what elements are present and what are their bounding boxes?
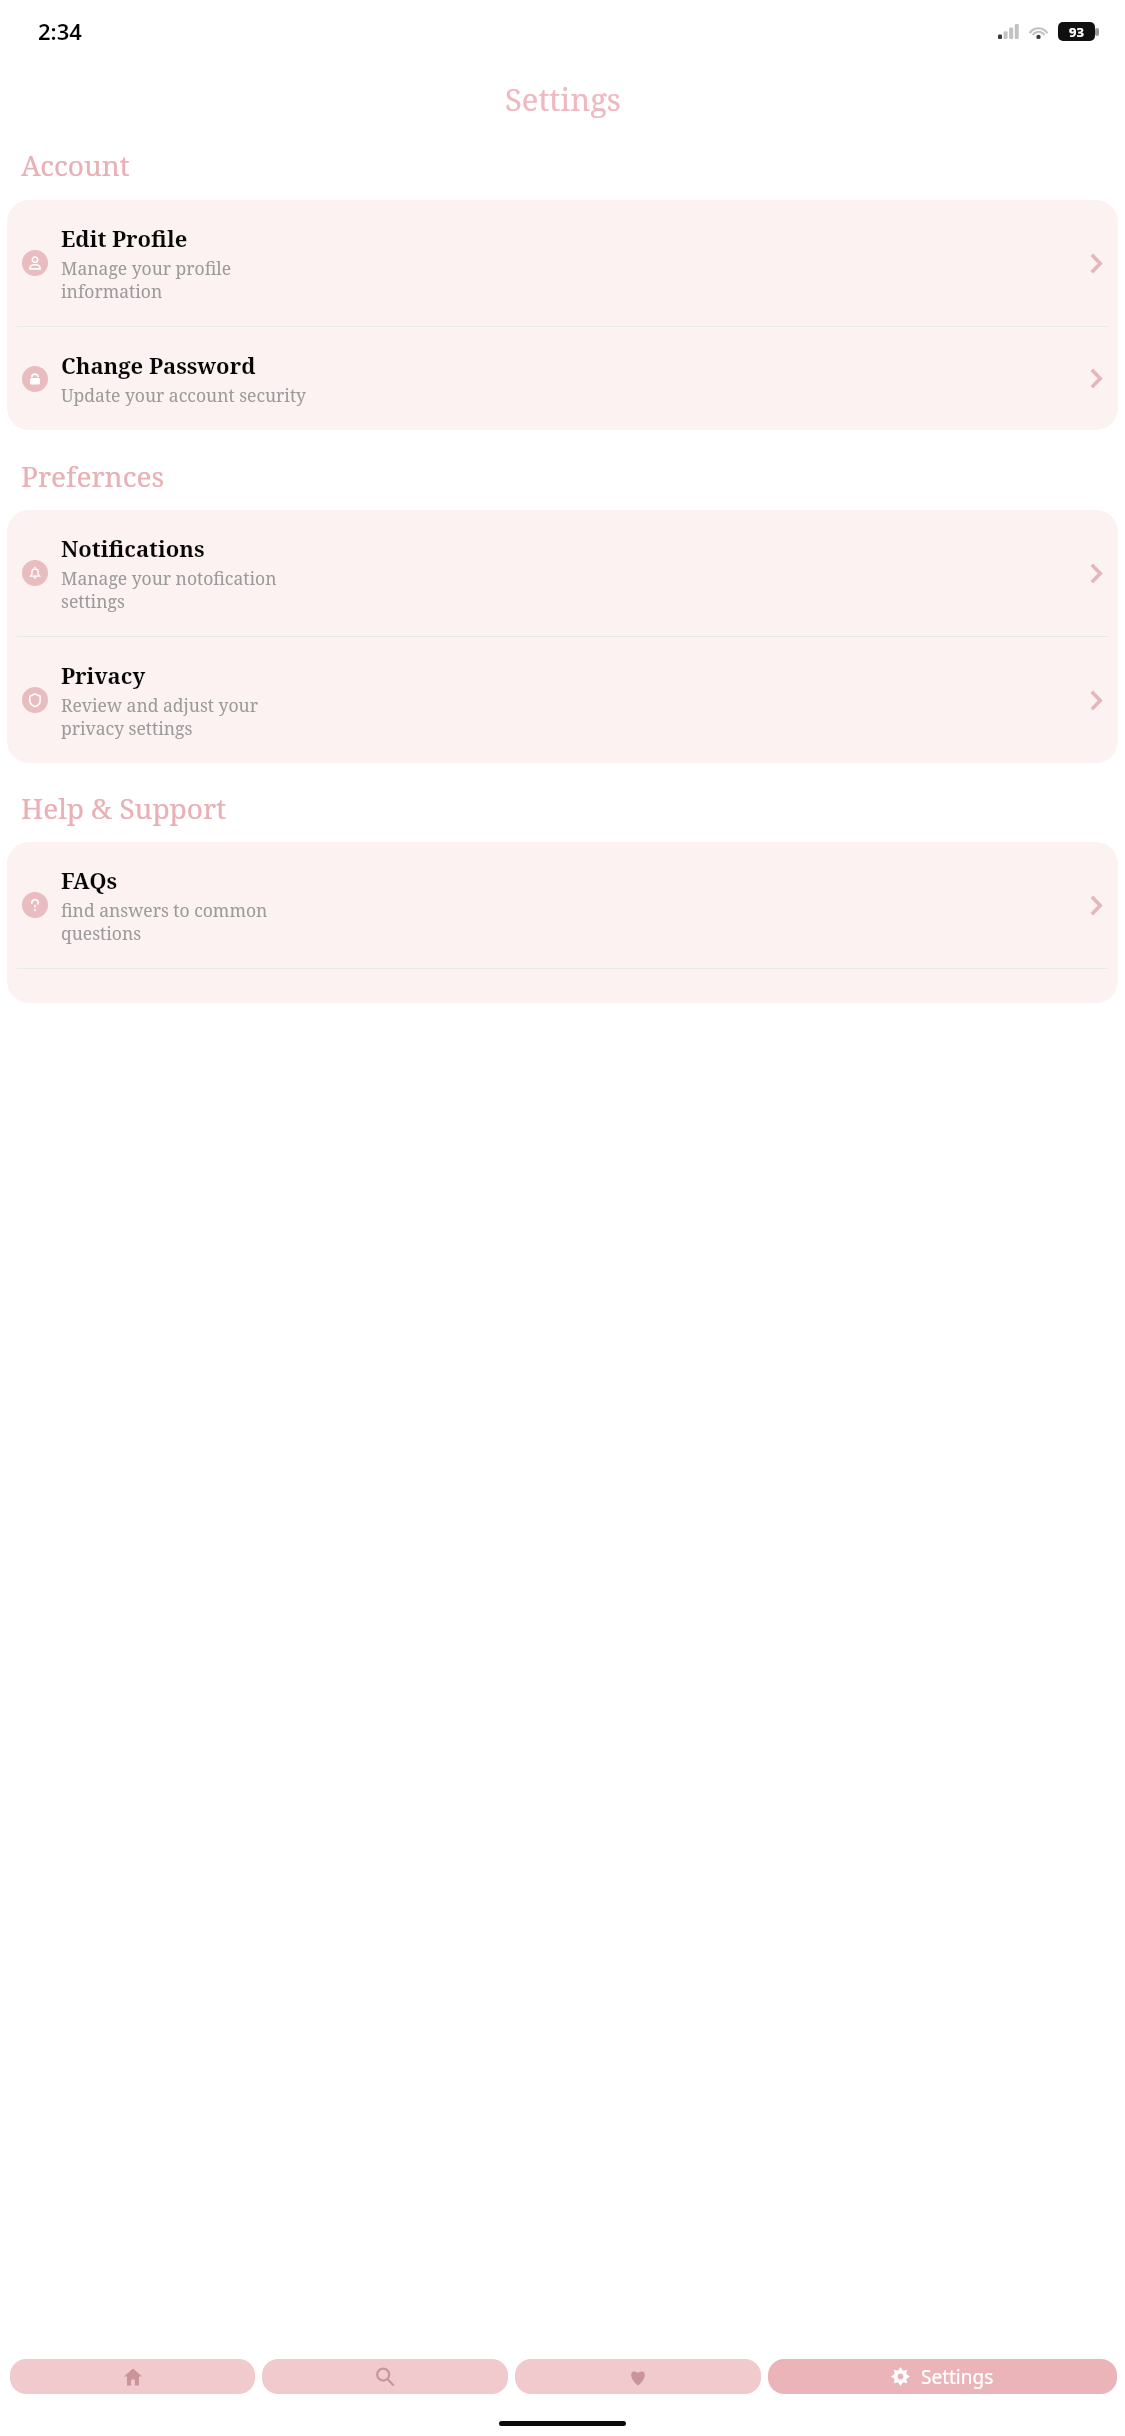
staticText: find answers to common questions xyxy=(61,898,268,945)
staticText: Review and adjust your privacy settings xyxy=(61,693,258,740)
staticText: FAQs xyxy=(61,865,118,895)
staticText: Update your account security xyxy=(61,383,306,407)
staticText: 2:34 xyxy=(38,16,82,46)
button[interactable]: Home xyxy=(10,2359,255,2394)
button[interactable]: Edit Profile xyxy=(7,200,1118,326)
staticText: Change Password xyxy=(61,350,256,380)
button[interactable]: Settings xyxy=(768,2359,1117,2394)
staticText: 93 xyxy=(1069,23,1084,41)
button[interactable]: Privacy xyxy=(7,637,1118,763)
staticText: Edit Profile xyxy=(61,223,188,253)
button[interactable]: Favorites xyxy=(515,2359,761,2394)
staticText: Settings xyxy=(921,2364,994,2390)
staticText: Privacy xyxy=(61,660,146,690)
staticText: Notifications xyxy=(61,533,205,563)
button[interactable]: FAQs xyxy=(7,842,1118,968)
staticText: Manage your notofication settings xyxy=(61,566,277,613)
staticText: Manage your profile information xyxy=(61,256,232,303)
button[interactable]: Change Password xyxy=(7,327,1118,430)
staticText: Prefernces xyxy=(21,457,165,495)
staticText: Settings xyxy=(505,78,621,120)
button[interactable]: Notifications xyxy=(7,510,1118,636)
button[interactable]: Search xyxy=(262,2359,508,2394)
staticText: Help & Support xyxy=(21,789,226,827)
staticText: Account xyxy=(21,146,130,184)
